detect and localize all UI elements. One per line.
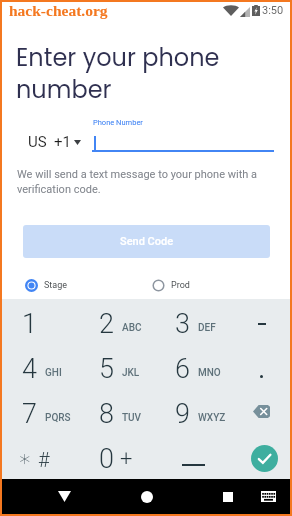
button[interactable]: 0 xyxy=(85,436,161,481)
button[interactable]: Stage xyxy=(25,279,68,292)
staticText: + xyxy=(120,446,133,472)
staticText: 3 xyxy=(175,308,190,340)
button[interactable]: 4 xyxy=(8,346,84,391)
staticText: GHI xyxy=(45,367,62,379)
staticText: 0 xyxy=(99,443,114,475)
button[interactable]: US xyxy=(28,131,81,153)
button[interactable]: 9 xyxy=(161,391,237,436)
button[interactable]: 2 xyxy=(85,301,161,346)
staticText: hack-cheat.org xyxy=(9,2,108,19)
staticText: 5 xyxy=(99,353,114,385)
staticText: 4 xyxy=(22,353,37,385)
other: Enter xyxy=(251,445,278,472)
staticText: +1 xyxy=(54,133,71,151)
staticText: 2 xyxy=(99,308,114,340)
button[interactable]: 1 xyxy=(8,301,84,346)
staticText: 6 xyxy=(175,353,190,385)
button[interactable]: 8 xyxy=(85,391,161,436)
staticText: 7 xyxy=(22,398,37,430)
button[interactable]: 7 xyxy=(8,391,84,436)
staticText: 8 xyxy=(99,398,114,430)
staticText: MNO xyxy=(198,367,221,379)
staticText: JKL xyxy=(122,367,140,379)
button[interactable]: Prod xyxy=(152,279,190,292)
button[interactable]: Backspace xyxy=(238,391,290,436)
button[interactable]: 5 xyxy=(85,346,161,391)
staticText: We will send a text message to your phon… xyxy=(17,168,269,196)
staticText: Enter your phone number xyxy=(16,41,231,107)
staticText: TUV xyxy=(122,412,142,424)
button[interactable] xyxy=(238,346,290,391)
staticText: ∗ xyxy=(18,446,32,472)
button[interactable]: Send Code xyxy=(23,225,270,258)
button[interactable]: 3 xyxy=(161,301,237,346)
button[interactable]: Space xyxy=(170,436,215,481)
staticText: 1 xyxy=(22,308,37,340)
button[interactable]: Keyboard xyxy=(252,479,285,514)
staticText: Prod xyxy=(171,280,190,291)
staticText: Phone Number xyxy=(93,118,143,127)
button[interactable]: Home xyxy=(130,479,163,514)
button[interactable]: Back xyxy=(48,479,81,514)
staticText: ABC xyxy=(122,322,142,334)
staticText: Send Code xyxy=(120,235,174,248)
staticText: WXYZ xyxy=(198,412,226,424)
button[interactable]: ∗ xyxy=(7,436,83,481)
staticText: 9 xyxy=(175,398,190,430)
staticText: 3:50 xyxy=(262,4,284,17)
button[interactable]: Recents xyxy=(211,479,244,514)
staticText: PQRS xyxy=(45,412,71,424)
staticText: DEF xyxy=(198,322,216,334)
staticText: Stage xyxy=(44,280,68,291)
button[interactable]: Enter xyxy=(238,436,290,481)
button[interactable] xyxy=(238,301,290,346)
button[interactable]: 6 xyxy=(161,346,237,391)
staticText: US xyxy=(28,133,47,151)
other: Backspace xyxy=(253,405,270,418)
staticText: # xyxy=(38,448,50,471)
